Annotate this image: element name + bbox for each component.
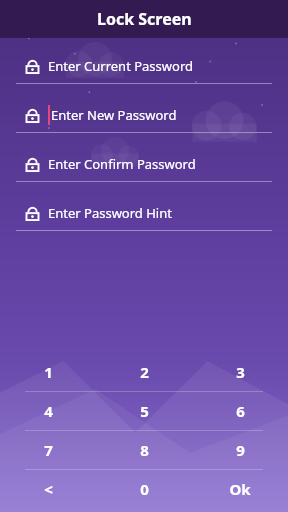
staticText: 7 [44, 440, 53, 460]
button[interactable]: Lock [0, 49, 288, 98]
button[interactable]: 4 [0, 392, 96, 430]
other: Lock [24, 58, 41, 75]
button[interactable]: 0 [96, 470, 192, 508]
staticText: < [44, 479, 53, 499]
button[interactable]: 9 [192, 431, 288, 469]
other: Lock [24, 107, 41, 124]
other: Lock [24, 156, 41, 173]
button[interactable]: 3 [192, 353, 288, 391]
staticText: 9 [236, 440, 245, 460]
staticText: 2 [140, 362, 149, 382]
staticText: 4 [44, 401, 53, 421]
button[interactable]: 8 [96, 431, 192, 469]
button[interactable]: 2 [96, 353, 192, 391]
button[interactable]: 6 [192, 392, 288, 430]
staticText: Lock Screen [97, 8, 192, 30]
button[interactable]: Lock [0, 147, 288, 196]
staticText: Enter Current Password [48, 57, 194, 75]
staticText: 0 [140, 479, 149, 499]
other: Lock [24, 205, 41, 222]
staticText: 1 [44, 362, 53, 382]
staticText: 6 [236, 401, 245, 421]
button[interactable]: Ok [192, 470, 288, 508]
button[interactable]: 7 [0, 431, 96, 469]
staticText: 3 [236, 362, 245, 382]
button[interactable]: Lock [0, 98, 288, 147]
staticText: Ok [229, 479, 251, 499]
staticText: Enter New Password [51, 106, 177, 124]
button[interactable]: 5 [96, 392, 192, 430]
staticText: Enter Password Hint [48, 204, 172, 222]
staticText: 5 [140, 401, 149, 421]
staticText: 8 [140, 440, 149, 460]
button[interactable]: Lock [0, 196, 288, 245]
button[interactable]: 1 [0, 353, 96, 391]
staticText: Enter Confirm Password [48, 155, 196, 173]
button[interactable]: < [0, 470, 96, 508]
